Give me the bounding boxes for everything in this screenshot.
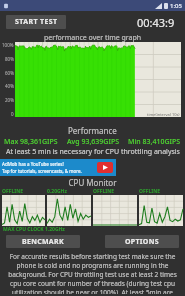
staticText: 40% (5, 83, 14, 89)
button[interactable]: START TEST (6, 15, 66, 29)
staticText: Tap for tutorials, screencasts, & more. (2, 168, 82, 174)
staticText: 0.20GHz (47, 188, 67, 195)
button[interactable]: BENCMARK (6, 235, 80, 248)
staticText: Max 98,361GIPS (4, 137, 58, 147)
other: Play video (97, 162, 113, 173)
staticText: CPU Monitor (0, 177, 185, 188)
staticText: Min 83,410GIPS (128, 137, 181, 147)
button[interactable]: OPTIONS (105, 235, 179, 248)
staticText: 80% (5, 56, 14, 62)
staticText: OFFLINE (93, 188, 115, 195)
staticText: 0 (11, 111, 14, 117)
staticText: OFFLINE (139, 188, 161, 195)
staticText: Performance (68, 125, 117, 136)
staticText: 20% (5, 97, 14, 103)
staticText: START TEST (15, 17, 58, 27)
staticText: 60% (5, 70, 14, 76)
staticText: BENCMARK (22, 237, 64, 247)
staticText: OFFLINE (2, 188, 24, 195)
staticText: MAX CPU CLOCK 1.20GHz (3, 226, 65, 233)
staticText: OPTIONS (125, 237, 159, 247)
staticText: For accurate results before starting tes… (6, 252, 179, 294)
staticText: 100% (2, 42, 14, 48)
staticText: AdMob has a YouTube series! (2, 161, 64, 167)
button[interactable]: AdMob has a YouTube series! (0, 159, 116, 176)
staticText: At least 5 min is necessary for CPU thro… (6, 147, 180, 157)
staticText: Avg 93,639GIPS (67, 137, 120, 147)
staticText: 00:43:9 (137, 15, 175, 30)
staticText: performance over time graph (44, 33, 142, 43)
staticText: time(interval 10s) (147, 112, 180, 117)
staticText: 1:05 (170, 2, 182, 10)
